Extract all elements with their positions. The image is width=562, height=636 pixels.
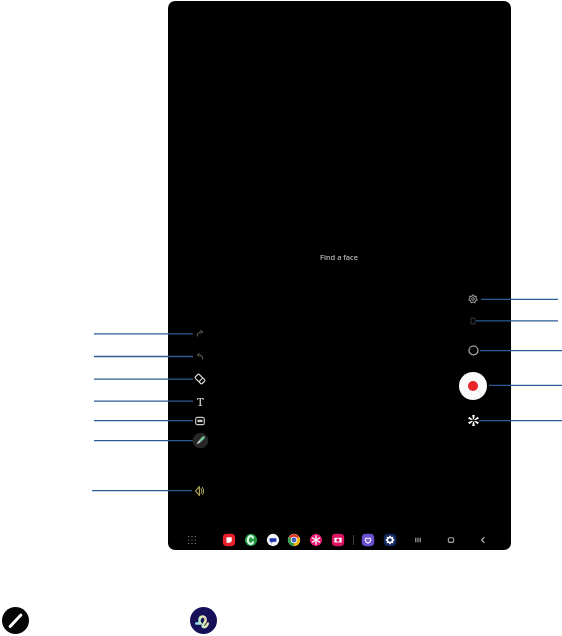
button[interactable]: Switch mode — [466, 343, 481, 358]
button[interactable]: Settings — [383, 533, 397, 547]
button[interactable]: Gallery — [309, 533, 323, 547]
staticText: Find a face — [299, 252, 379, 636]
button[interactable]: Settings — [466, 292, 480, 306]
button[interactable]: Undo — [192, 349, 208, 365]
button[interactable]: Samsung Health — [361, 533, 375, 547]
button[interactable]: Edit — [2, 607, 29, 634]
button[interactable]: Phone — [244, 533, 258, 547]
button[interactable]: Camera — [331, 533, 345, 547]
button[interactable]: Eraser — [192, 371, 208, 387]
button[interactable]: Text — [192, 393, 208, 409]
button[interactable]: Brand logo — [190, 607, 217, 634]
button[interactable]: Home — [444, 533, 458, 547]
staticText: T — [197, 394, 204, 409]
button[interactable]: Insert GIF — [192, 413, 208, 429]
button[interactable]: Messages — [266, 533, 280, 547]
button[interactable]: Samsung Notes — [222, 533, 236, 547]
button[interactable]: Pen — [192, 432, 209, 449]
button[interactable]: Record — [459, 372, 487, 400]
button[interactable]: Recents — [411, 533, 425, 547]
button[interactable]: Volume — [192, 483, 208, 499]
button[interactable]: Gallery — [466, 314, 480, 328]
button[interactable]: Chrome — [287, 533, 301, 547]
button[interactable]: Effects — [468, 415, 479, 426]
button[interactable]: Redo — [192, 326, 208, 342]
button[interactable]: Apps — [185, 533, 199, 547]
button[interactable]: Back — [476, 533, 490, 547]
